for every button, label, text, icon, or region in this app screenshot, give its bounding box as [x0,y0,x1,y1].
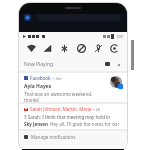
button[interactable]: Mobile data [40,41,55,56]
button[interactable]: Bluetooth [57,41,72,56]
button[interactable]: Cast [102,59,112,69]
staticText: • 2h [93,107,101,112]
staticText: 100 [116,34,123,39]
staticText: Ayla Hayes [24,83,52,90]
button[interactable]: Manage notifications [19,131,127,149]
button[interactable]: Flashlight [91,41,106,56]
staticText: Sarah Johnson, Martin, Maria [30,106,92,112]
staticText: Facebook [30,75,51,81]
button[interactable]: Wi-Fi [24,41,39,56]
staticText: Sky Jensen [24,121,48,127]
staticText: Manage notifications [31,134,76,140]
staticText: 3 Sarah: I think that meeting may hold i… [24,114,123,120]
staticText: That was an awesome weekend, thanks! [24,91,106,102]
staticText: • 3m [53,76,62,81]
button[interactable]: More options [114,60,123,69]
button[interactable]: Auto rotate [107,41,122,56]
button[interactable]: Sarah Johnson, Martin, Maria [19,104,127,129]
staticText: Now Playing [24,61,54,68]
staticText: Hey all, I'll grab the notes for our mee… [50,121,123,127]
button[interactable]: Do not disturb [74,41,89,56]
button[interactable]: Facebook [19,73,127,102]
